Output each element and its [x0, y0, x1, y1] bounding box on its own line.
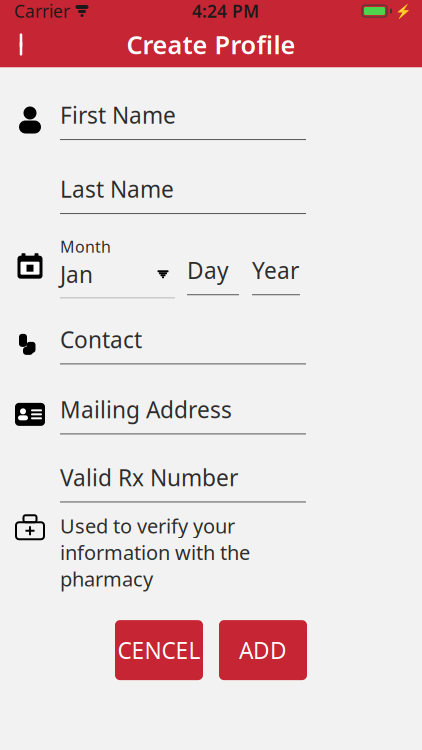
button[interactable]: Last Name	[60, 174, 306, 214]
button[interactable]: Contact	[60, 324, 306, 364]
staticText: 4:24 PM	[192, 0, 259, 22]
button[interactable]: ADD	[219, 620, 307, 680]
staticText: Used to verify your information with the…	[60, 512, 250, 592]
staticText: Year	[252, 255, 299, 285]
button[interactable]: Day	[187, 239, 239, 295]
button[interactable]: CENCEL	[115, 620, 203, 680]
staticText: ⚡	[395, 3, 412, 19]
button[interactable]: Valid Rx Number	[60, 462, 306, 502]
staticText: CENCEL	[117, 635, 200, 665]
staticText: Mailing Address	[60, 394, 232, 424]
staticText: Jan	[60, 259, 93, 289]
button[interactable]: Year	[252, 239, 300, 295]
staticText: First Name	[60, 100, 176, 130]
button[interactable]: Mailing Address	[60, 394, 306, 434]
button[interactable]: First Name	[60, 100, 306, 140]
staticText: Last Name	[60, 174, 174, 204]
staticText: ADD	[239, 635, 287, 665]
staticText: Carrier	[14, 0, 70, 22]
staticText: Valid Rx Number	[60, 462, 238, 492]
button[interactable]: Month	[60, 236, 175, 298]
staticText: Day	[187, 255, 229, 285]
staticText: Month	[60, 236, 111, 257]
staticText: Create Profile	[126, 28, 295, 61]
staticText: Contact	[60, 324, 142, 354]
button[interactable]: Back	[0, 22, 46, 67]
